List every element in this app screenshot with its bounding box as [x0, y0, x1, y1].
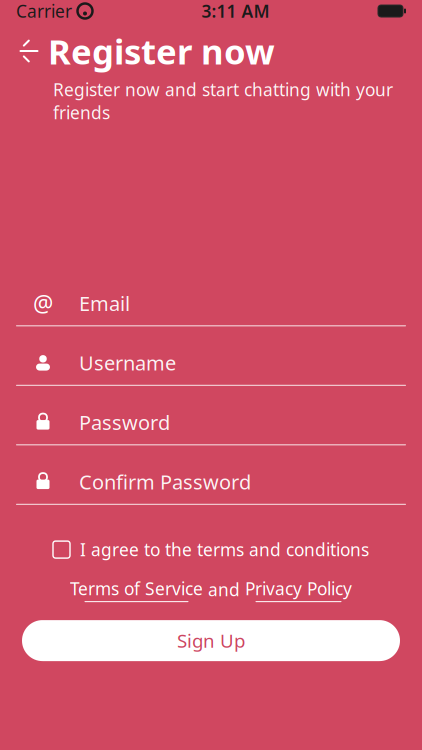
staticText: Sign Up — [177, 628, 245, 653]
staticText: and — [208, 578, 240, 601]
staticText: @ — [33, 288, 53, 318]
staticText: Username — [79, 349, 176, 376]
staticText: Carrier — [16, 0, 72, 22]
button[interactable]: I agree to the terms and conditions — [53, 534, 369, 565]
button[interactable]: Terms of Service — [70, 577, 203, 602]
staticText: Register now — [48, 28, 275, 74]
button[interactable]: Privacy Policy — [245, 577, 352, 602]
staticText: Password — [79, 409, 170, 436]
staticText: Confirm Password — [79, 468, 251, 495]
staticText: Privacy Policy — [245, 577, 352, 600]
staticText: 3:11 AM — [201, 0, 269, 22]
button[interactable]: Sign Up — [22, 620, 400, 661]
staticText: Terms of Service — [70, 577, 203, 600]
staticText: I agree to the terms and conditions — [80, 538, 369, 561]
staticText: Register now and start chatting with you… — [53, 78, 393, 124]
staticText: Email — [79, 290, 130, 317]
button[interactable]: Back — [10, 32, 48, 70]
